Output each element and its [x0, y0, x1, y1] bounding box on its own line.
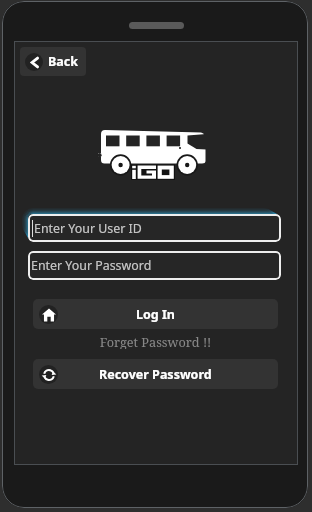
button[interactable]: Log In: [33, 299, 278, 329]
staticText: Back: [48, 53, 79, 70]
staticText: Enter Your User ID: [34, 220, 142, 237]
staticText: Log In: [136, 306, 175, 323]
button[interactable]: Recover Password: [33, 359, 278, 389]
button[interactable]: Back: [20, 47, 86, 76]
button[interactable]: Enter Your Password: [28, 251, 281, 280]
staticText: Enter Your Password: [31, 257, 152, 274]
button[interactable]: Enter Your User ID: [28, 214, 281, 242]
button[interactable]: Forget Password !!: [33, 333, 278, 349]
staticText: Recover Password: [99, 366, 212, 383]
